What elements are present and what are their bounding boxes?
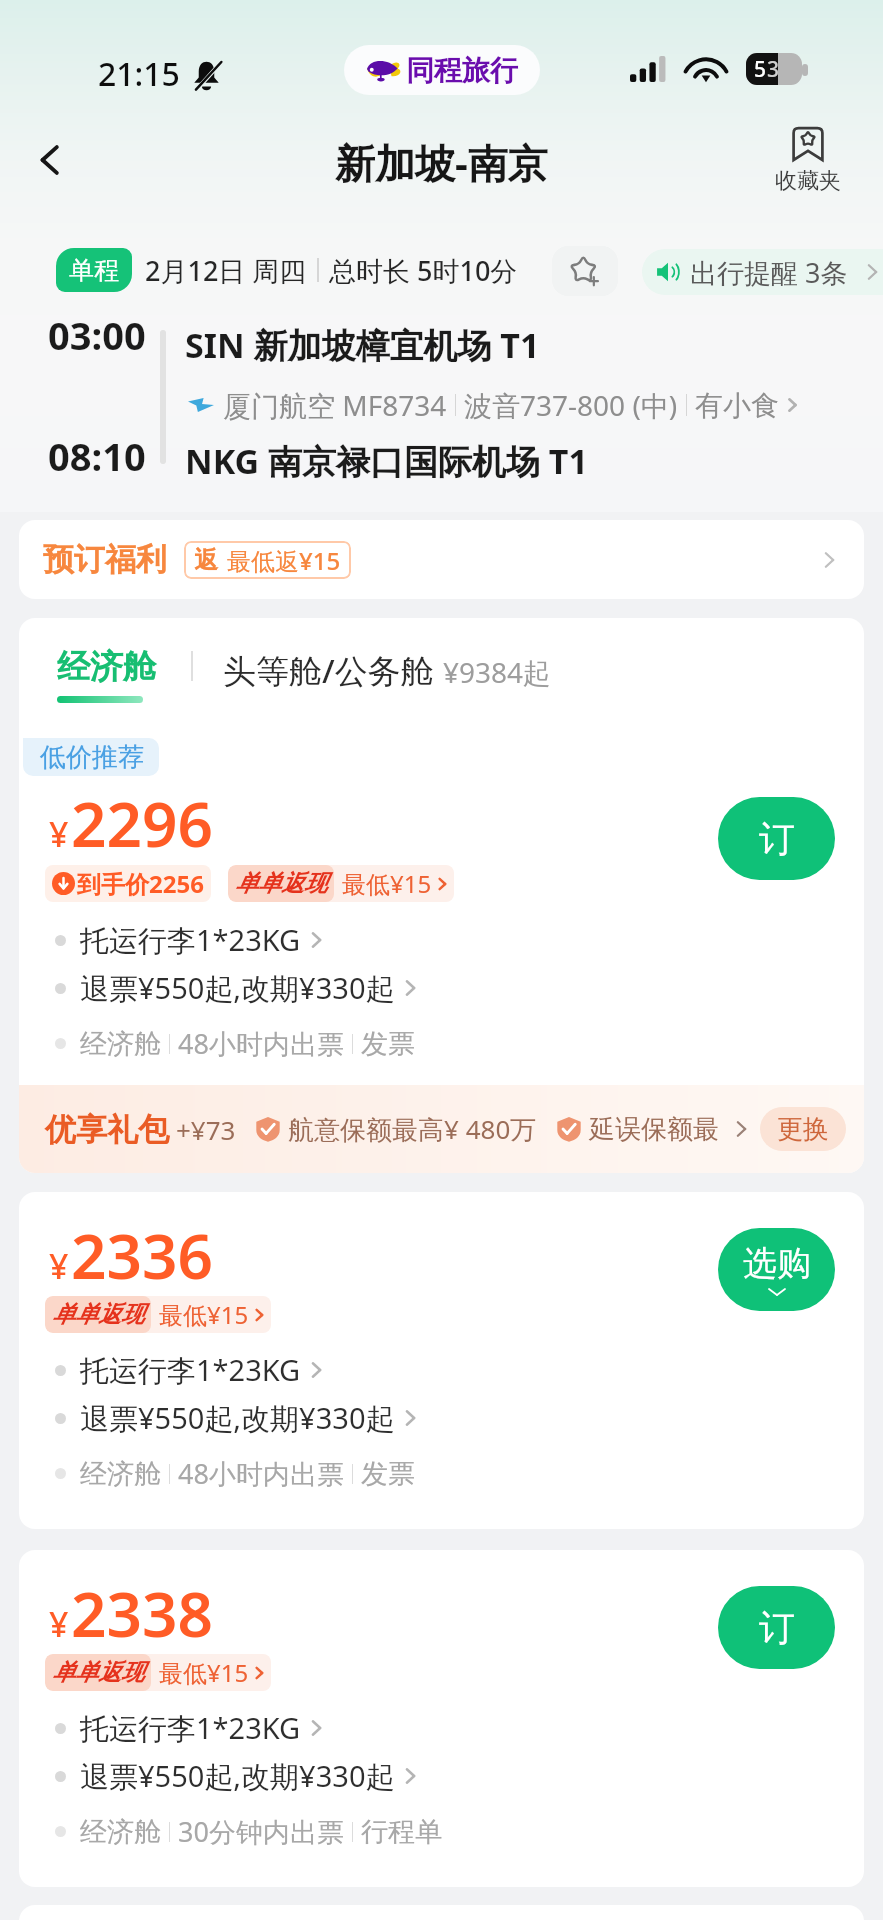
staticText: ¥ [49, 1601, 69, 1647]
staticText: 最低¥15 [159, 1656, 249, 1689]
button[interactable]: 订 [718, 1586, 835, 1669]
button[interactable]: 退票¥550起,改期¥330起 [55, 968, 423, 1008]
staticText: 单程 [69, 255, 119, 286]
staticText: 发票 [361, 1457, 415, 1491]
staticText: 单单返现 [52, 1658, 144, 1687]
staticText: 03:00 [48, 309, 146, 361]
staticText: 单单返现 [235, 869, 327, 898]
staticText: 2336 [71, 1213, 213, 1297]
staticText: 到手价2256 [77, 867, 204, 900]
button[interactable]: 收藏夹 [770, 125, 846, 195]
staticText: ¥ [49, 811, 69, 857]
button[interactable]: 到手价2256 [45, 865, 211, 902]
staticText: 更换 [777, 1113, 829, 1146]
button[interactable]: Add to favourites [552, 246, 618, 296]
staticText: 21:15 [98, 52, 180, 96]
staticText: 托运行李1*23KG [80, 1350, 301, 1390]
button[interactable]: ¥ [19, 1192, 864, 1529]
staticText: 48小时内出票 [178, 1455, 344, 1492]
staticText: 2月12日 周四 [145, 252, 307, 289]
staticText: 预订福利 [43, 540, 167, 579]
staticText: 经济舱 [80, 1027, 161, 1061]
staticText: 48小时内出票 [178, 1025, 344, 1062]
button[interactable]: 预订福利 [19, 520, 864, 599]
button[interactable]: 头等舱/公务舱 [223, 648, 552, 693]
staticText: 08:10 [48, 430, 146, 482]
button[interactable]: 更换 [760, 1107, 846, 1151]
button[interactable]: 托运行李1*23KG [55, 1350, 329, 1390]
staticText: ¥ [49, 1243, 69, 1289]
staticText: 最低¥15 [159, 1298, 249, 1331]
staticText: ¥9384起 [443, 653, 552, 691]
staticText: 最低¥15 [342, 867, 432, 900]
staticText: 选购 [743, 1242, 811, 1285]
staticText: 延误保额最 [589, 1113, 719, 1146]
staticText: 托运行李1*23KG [80, 1708, 301, 1748]
staticText: 退票¥550起,改期¥330起 [80, 1756, 395, 1796]
staticText: 订 [759, 816, 795, 861]
staticText: 新加坡-南京 [335, 135, 548, 190]
staticText: 返 [194, 545, 218, 575]
staticText: 退票¥550起,改期¥330起 [80, 968, 395, 1008]
button[interactable]: 单单返现 [45, 1296, 271, 1333]
staticText: 2296 [71, 781, 213, 865]
button[interactable]: ¥ [19, 1550, 864, 1887]
staticText: 经济舱 [80, 1815, 161, 1849]
staticText: 优享礼包 [45, 1110, 169, 1149]
staticText: 经济舱 [80, 1457, 161, 1491]
staticText: 退票¥550起,改期¥330起 [80, 1398, 395, 1438]
staticText: 出行提醒 3条 [690, 254, 848, 291]
staticText: 单单返现 [52, 1300, 144, 1329]
staticText: 航意保额最高¥ 480万 [288, 1111, 537, 1147]
button[interactable]: 优享礼包 [19, 1085, 864, 1173]
staticText: 托运行李1*23KG [80, 920, 301, 960]
button[interactable]: Back [18, 128, 82, 192]
staticText: 波音737-800 (中) [464, 386, 678, 424]
staticText: 30分钟内出票 [178, 1813, 344, 1850]
staticText: 订 [759, 1605, 795, 1650]
staticText: 收藏夹 [775, 167, 841, 195]
staticText: 发票 [361, 1027, 415, 1061]
staticText: NKG 南京禄口国际机场 T1 [185, 438, 588, 484]
button[interactable]: 单单返现 [228, 865, 454, 902]
staticText: 5 [754, 55, 767, 84]
button[interactable]: 托运行李1*23KG [55, 920, 329, 960]
button[interactable]: 退票¥550起,改期¥330起 [55, 1756, 423, 1796]
button[interactable]: 退票¥550起,改期¥330起 [55, 1398, 423, 1438]
button[interactable]: 出行提醒 3条 [642, 249, 883, 295]
staticText: SIN 新加坡樟宜机场 T1 [185, 322, 540, 368]
button[interactable]: 选购 [718, 1228, 835, 1311]
staticText: 最低返¥15 [227, 544, 341, 577]
staticText: 经济舱 [57, 646, 156, 688]
staticText: 有小食 [695, 388, 779, 423]
staticText: 2338 [71, 1571, 213, 1655]
staticText: 头等舱/公务舱 [223, 648, 434, 693]
button[interactable]: 托运行李1*23KG [55, 1708, 329, 1748]
button[interactable]: 订 [718, 797, 835, 880]
staticText: 同程旅行 [406, 53, 518, 88]
staticText: +¥73 [176, 1112, 236, 1147]
button[interactable]: 经济舱 [57, 646, 156, 703]
button[interactable]: 单单返现 [45, 1654, 271, 1691]
staticText: 低价推荐 [40, 741, 144, 774]
staticText: 3 [767, 55, 780, 84]
staticText: 厦门航空 MF8734 [223, 386, 447, 424]
staticText: 总时长 5时10分 [329, 252, 518, 289]
staticText: 行程单 [361, 1815, 442, 1849]
